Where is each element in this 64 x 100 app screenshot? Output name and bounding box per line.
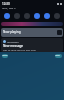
button[interactable]: Now playing: [1, 28, 63, 37]
staticText: New message: [3, 44, 23, 48]
staticText: Tap to read the full text now: [3, 48, 36, 51]
staticText: Mon, Mar 4: [2, 6, 16, 9]
button[interactable]: Manage: [2, 54, 8, 58]
button[interactable]: Toggle: [24, 13, 30, 19]
button[interactable]: Brightness: [1, 22, 63, 26]
staticText: Clear all: [55, 54, 62, 58]
button[interactable]: Toggle: [44, 13, 50, 19]
button[interactable]: Toggle: [14, 13, 20, 19]
button[interactable]: Toggle: [54, 13, 60, 19]
button[interactable]: Toggle: [34, 13, 40, 19]
staticText: Messages: [7, 40, 19, 43]
staticText: 12:30: [2, 2, 10, 6]
button[interactable]: Clear all: [55, 54, 62, 58]
button[interactable]: Toggle: [4, 13, 10, 19]
staticText: Manage: [2, 54, 8, 58]
staticText: Now playing: [3, 30, 21, 34]
button[interactable]: Messages: [1, 38, 63, 52]
